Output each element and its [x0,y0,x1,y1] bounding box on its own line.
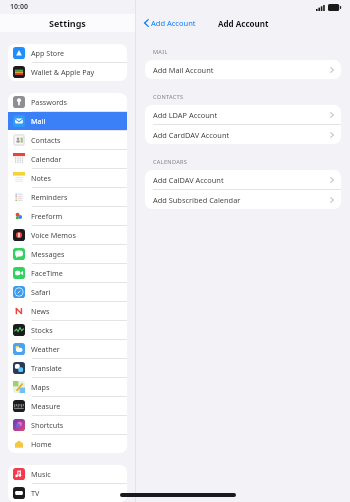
button[interactable]: News [8,302,127,320]
button[interactable]: Notes [8,169,127,187]
staticText: Add Account [151,18,196,28]
staticText: Add CardDAV Account [153,130,230,140]
button[interactable]: Messages [8,245,127,263]
staticText: 10:00 [10,2,28,12]
button[interactable]: Translate [8,359,127,377]
staticText: CALENDARS [153,158,188,166]
staticText: Safari [31,287,51,297]
staticText: Home [31,439,52,449]
staticText: Calendar [31,154,62,164]
staticText: Weather [31,344,60,354]
button[interactable]: Add LDAP Account [145,105,341,124]
staticText: Voice Memos [31,230,76,240]
staticText: News [31,306,50,316]
staticText: Maps [31,382,50,392]
button[interactable]: Freeform [8,207,127,225]
button[interactable]: Add CalDAV Account [145,170,341,189]
staticText: Reminders [31,192,68,202]
button[interactable]: FaceTime [8,264,127,282]
staticText: Mail [31,116,46,126]
button[interactable]: Stocks [8,321,127,339]
button[interactable]: Voice Memos [8,226,127,244]
staticText: Wallet & Apple Pay [31,67,95,77]
button[interactable]: TV [8,484,127,502]
staticText: Music [31,469,51,479]
staticText: Contacts [31,135,61,145]
button[interactable]: Reminders [8,188,127,206]
button[interactable]: Maps [8,378,127,396]
button[interactable]: Home [8,435,127,453]
staticText: App Store [31,48,65,58]
button[interactable]: Add Account [142,16,198,30]
staticText: Shortcuts [31,420,64,430]
staticText: Measure [31,401,61,411]
staticText: Stocks [31,325,53,335]
button[interactable]: Add Mail Account [145,60,341,79]
button[interactable]: Wallet & Apple Pay [8,63,127,81]
staticText: Messages [31,249,65,259]
button[interactable]: Weather [8,340,127,358]
button[interactable]: Safari [8,283,127,301]
staticText: MAIL [153,48,168,56]
button[interactable]: Music [8,465,127,483]
button[interactable]: Add CardDAV Account [145,125,341,144]
button[interactable]: Contacts [8,131,127,149]
button[interactable]: Calendar [8,150,127,168]
staticText: Freeform [31,211,63,221]
staticText: TV [31,488,40,498]
staticText: Add Account [218,18,269,29]
staticText: Notes [31,173,51,183]
staticText: CONTACTS [153,93,184,101]
staticText: Add Subscribed Calendar [153,195,241,205]
button[interactable]: Mail [8,112,127,130]
staticText: Translate [31,363,62,373]
staticText: Add CalDAV Account [153,175,224,185]
button[interactable]: App Store [8,44,127,62]
staticText: Passwords [31,97,67,107]
button[interactable]: Measure [8,397,127,415]
button[interactable]: Add Subscribed Calendar [145,190,341,209]
button[interactable]: Shortcuts [8,416,127,434]
button[interactable]: Passwords [8,93,127,111]
staticText: Settings [49,17,86,29]
staticText: Add LDAP Account [153,110,218,120]
staticText: FaceTime [31,268,63,278]
staticText: Add Mail Account [153,65,214,75]
